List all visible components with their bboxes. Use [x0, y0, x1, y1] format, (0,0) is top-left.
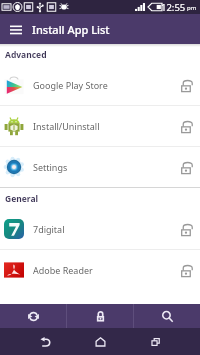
- staticText: 12:55: [161, 1, 186, 14]
- staticText: Advanced: [5, 49, 47, 61]
- staticText: 7digital: [33, 223, 65, 235]
- button[interactable]: Unlocked, tap to lock: [172, 209, 200, 249]
- button[interactable]: Open navigation drawer: [0, 14, 32, 44]
- button[interactable]: Back: [18, 328, 73, 355]
- button[interactable]: Google Play Store: [0, 65, 200, 105]
- button[interactable]: Recent apps: [128, 328, 183, 355]
- staticText: General: [5, 193, 39, 205]
- button[interactable]: Install/Uninstall: [0, 106, 200, 146]
- button[interactable]: Unlocked, tap to lock: [172, 147, 200, 187]
- staticText: Google Play Store: [33, 79, 108, 91]
- button[interactable]: Adobe Reader: [0, 250, 200, 290]
- button[interactable]: 7digital: [0, 209, 200, 249]
- button[interactable]: Lock all: [67, 304, 133, 328]
- button[interactable]: Home: [73, 328, 128, 355]
- staticText: Settings: [33, 161, 68, 173]
- staticText: Install/Uninstall: [33, 120, 100, 132]
- button[interactable]: Search: [134, 304, 200, 328]
- staticText: pm: [187, 4, 197, 12]
- staticText: Install App List: [32, 22, 110, 37]
- staticText: Adobe Reader: [33, 264, 93, 276]
- button[interactable]: Unlocked, tap to lock: [172, 65, 200, 105]
- button[interactable]: Unlocked, tap to lock: [172, 250, 200, 290]
- button[interactable]: Settings: [0, 147, 200, 187]
- button[interactable]: Refresh: [0, 304, 66, 328]
- button[interactable]: Unlocked, tap to lock: [172, 106, 200, 146]
